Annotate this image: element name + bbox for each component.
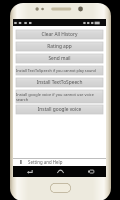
- button[interactable]: Install TextToSpeech: [16, 78, 103, 87]
- button[interactable]: Send mail: [16, 54, 103, 63]
- button[interactable]: Install google voice if you cannot use v…: [16, 90, 103, 103]
- staticText: Rating app: [16, 43, 103, 50]
- staticText: Clear All History: [16, 31, 103, 38]
- button[interactable]: Setting and Help: [13, 158, 106, 166]
- button[interactable]: Home key: [50, 183, 71, 193]
- button[interactable]: Install TextToSpeech if you cannot play …: [16, 66, 103, 75]
- staticText: Setting and Help: [28, 159, 63, 165]
- button[interactable]: Recent apps: [84, 166, 98, 177]
- staticText: Install google voice if you cannot use v…: [16, 92, 103, 102]
- button[interactable]: Install google voice: [16, 105, 103, 114]
- staticText: Install google voice: [16, 106, 103, 113]
- staticText: Install TextToSpeech if you cannot play …: [16, 68, 103, 73]
- button[interactable]: Home: [53, 166, 67, 177]
- button[interactable]: Clear All History: [16, 30, 103, 39]
- button[interactable]: Back: [22, 166, 36, 177]
- staticText: Install TextToSpeech: [16, 79, 103, 86]
- button[interactable]: Rating app: [16, 42, 103, 51]
- staticText: Send mail: [16, 55, 103, 62]
